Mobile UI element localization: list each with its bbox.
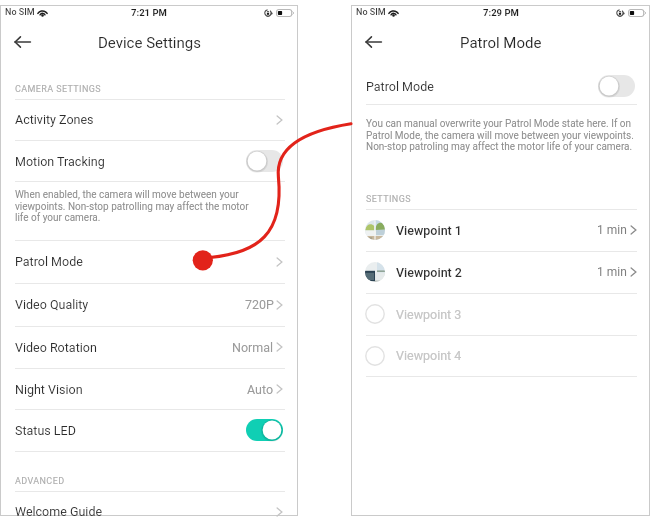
button[interactable]: Night Vision bbox=[1, 368, 297, 410]
staticText: Viewpoint 3 bbox=[396, 307, 462, 322]
staticText: Patrol Mode bbox=[15, 254, 83, 269]
staticText: Status LED bbox=[15, 423, 76, 438]
button[interactable]: Switch off bbox=[598, 75, 635, 97]
staticText: Normal bbox=[232, 340, 274, 355]
button[interactable]: Switch off bbox=[246, 150, 283, 172]
button[interactable]: Patrol Mode bbox=[352, 68, 649, 104]
staticText: Motion Tracking bbox=[15, 154, 105, 169]
staticText: No SIM bbox=[5, 7, 35, 18]
button[interactable]: Viewpoint 3 bbox=[352, 293, 649, 335]
staticText: No SIM bbox=[356, 7, 386, 18]
staticText: SETTINGS bbox=[366, 194, 411, 205]
staticText: 7:29 PM bbox=[483, 7, 519, 18]
button[interactable]: Patrol Mode bbox=[1, 240, 297, 283]
button[interactable]: Viewpoint 4 bbox=[352, 335, 649, 376]
staticText: Video Rotation bbox=[15, 340, 97, 355]
button[interactable]: Video Rotation bbox=[1, 326, 297, 368]
staticText: Viewpoint 2 bbox=[396, 265, 462, 280]
button[interactable]: Viewpoint 1 bbox=[352, 209, 649, 251]
staticText: ADVANCED bbox=[15, 476, 65, 487]
button[interactable]: Back bbox=[7, 27, 37, 57]
staticText: 720P bbox=[245, 297, 274, 312]
staticText: 7:21 PM bbox=[131, 7, 167, 18]
button[interactable]: Status LED bbox=[1, 409, 297, 451]
staticText: Viewpoint 1 bbox=[396, 223, 462, 238]
staticText: When enabled, the camera will move betwe… bbox=[15, 189, 255, 223]
staticText: 1 min bbox=[597, 223, 627, 237]
staticText: You can manual overwrite your Patrol Mod… bbox=[366, 118, 635, 152]
button[interactable]: Video Quality bbox=[1, 283, 297, 326]
staticText: Welcome Guide bbox=[15, 504, 103, 519]
button[interactable]: Switch on bbox=[246, 419, 283, 441]
button[interactable]: Activity Zones bbox=[1, 99, 297, 140]
staticText: Night Vision bbox=[15, 382, 83, 397]
button[interactable]: Back bbox=[358, 27, 388, 57]
staticText: Viewpoint 4 bbox=[396, 348, 462, 363]
button[interactable]: Viewpoint 2 bbox=[352, 251, 649, 293]
staticText: CAMERA SETTINGS bbox=[15, 84, 102, 95]
button[interactable]: Motion Tracking bbox=[1, 140, 297, 182]
staticText: Auto bbox=[247, 382, 274, 397]
staticText: 1 min bbox=[597, 265, 627, 279]
staticText: Patrol Mode bbox=[460, 34, 542, 52]
staticText: Video Quality bbox=[15, 297, 89, 312]
button[interactable]: Welcome Guide bbox=[1, 491, 297, 520]
staticText: Patrol Mode bbox=[366, 79, 434, 94]
staticText: Activity Zones bbox=[15, 112, 94, 127]
staticText: Device Settings bbox=[98, 34, 201, 52]
